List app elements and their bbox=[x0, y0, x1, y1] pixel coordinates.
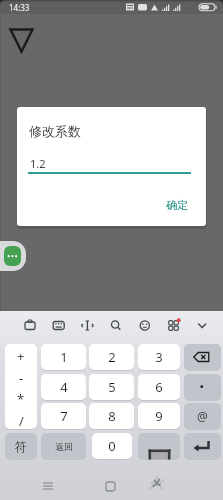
staticText: 5 bbox=[108, 378, 116, 396]
button[interactable]: 符 bbox=[5, 433, 37, 459]
button[interactable]: 5 bbox=[89, 374, 134, 400]
staticText: + bbox=[17, 347, 25, 365]
button[interactable] bbox=[184, 374, 221, 400]
staticText: 1.2 bbox=[30, 156, 46, 171]
staticText: @ bbox=[197, 408, 208, 424]
button[interactable]: 2 bbox=[89, 344, 134, 370]
staticText: 14:33 bbox=[9, 2, 30, 13]
staticText: 确定 bbox=[166, 198, 188, 212]
staticText: - bbox=[19, 369, 24, 387]
button[interactable] bbox=[184, 433, 221, 459]
button[interactable]: 8 bbox=[89, 403, 134, 429]
staticText: 6 bbox=[155, 378, 163, 396]
button[interactable] bbox=[138, 433, 180, 459]
staticText: 4 bbox=[60, 378, 68, 396]
button[interactable] bbox=[5, 344, 37, 429]
staticText: 1 bbox=[60, 348, 68, 366]
button[interactable] bbox=[0, 241, 26, 271]
staticText: / bbox=[19, 412, 24, 430]
button[interactable]: 9 bbox=[138, 403, 180, 429]
button[interactable]: 返回 bbox=[41, 433, 86, 459]
staticText: 7 bbox=[60, 407, 68, 425]
button[interactable]: 0 bbox=[92, 433, 132, 459]
staticText: 0 bbox=[108, 437, 116, 455]
staticText: 修改系数 bbox=[29, 123, 81, 139]
button[interactable]: 3 bbox=[138, 344, 180, 370]
button[interactable]: 7 bbox=[41, 403, 86, 429]
button[interactable] bbox=[184, 344, 221, 370]
staticText: 2 bbox=[108, 348, 116, 366]
staticText: 3 bbox=[155, 348, 163, 366]
button[interactable]: 确定 bbox=[156, 192, 198, 218]
button[interactable]: 1 bbox=[41, 344, 86, 370]
button[interactable]: @ bbox=[184, 403, 221, 429]
staticText: * bbox=[17, 390, 25, 408]
button[interactable]: 6 bbox=[138, 374, 180, 400]
staticText: 8 bbox=[108, 407, 116, 425]
staticText: 符 bbox=[15, 439, 27, 454]
staticText: 返回 bbox=[55, 441, 73, 452]
button[interactable]: 4 bbox=[41, 374, 86, 400]
staticText: 9 bbox=[155, 407, 163, 425]
